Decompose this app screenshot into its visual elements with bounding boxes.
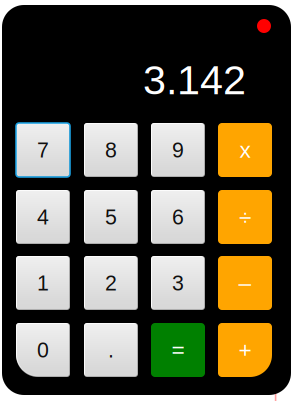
staticText: 7 xyxy=(37,138,49,162)
button[interactable]: Plus xyxy=(218,323,272,377)
staticText: 3.142 xyxy=(143,57,246,103)
button[interactable]: 0 xyxy=(16,323,70,377)
button[interactable]: 8 xyxy=(84,123,138,177)
button[interactable]: 2 xyxy=(84,256,138,310)
staticText: 2 xyxy=(105,271,117,295)
staticText: 5 xyxy=(105,205,117,229)
button[interactable]: Minus xyxy=(218,256,272,310)
button[interactable]: Multiply xyxy=(218,123,272,177)
staticText: 6 xyxy=(172,205,184,229)
button[interactable]: 3 xyxy=(151,256,205,310)
button[interactable]: 7 xyxy=(16,123,70,177)
staticText: 9 xyxy=(172,138,184,162)
button[interactable]: 1 xyxy=(16,256,70,310)
button[interactable]: . xyxy=(84,323,138,377)
button[interactable]: Power indicator xyxy=(257,19,271,33)
staticText: . xyxy=(108,338,114,362)
button[interactable]: 9 xyxy=(151,123,205,177)
staticText: ÷ xyxy=(239,204,251,230)
staticText: = xyxy=(171,337,184,363)
button[interactable]: 6 xyxy=(151,190,205,244)
staticText: + xyxy=(238,337,251,363)
staticText: 3 xyxy=(172,271,184,295)
staticText: x xyxy=(239,137,250,163)
button[interactable]: 4 xyxy=(16,190,70,244)
staticText: – xyxy=(238,270,251,296)
staticText: 8 xyxy=(105,138,117,162)
staticText: 1 xyxy=(37,271,49,295)
staticText: 4 xyxy=(37,205,49,229)
staticText: 0 xyxy=(37,338,49,362)
button[interactable]: Divide xyxy=(218,190,272,244)
button[interactable]: 5 xyxy=(84,190,138,244)
button[interactable]: Equals xyxy=(151,323,205,377)
